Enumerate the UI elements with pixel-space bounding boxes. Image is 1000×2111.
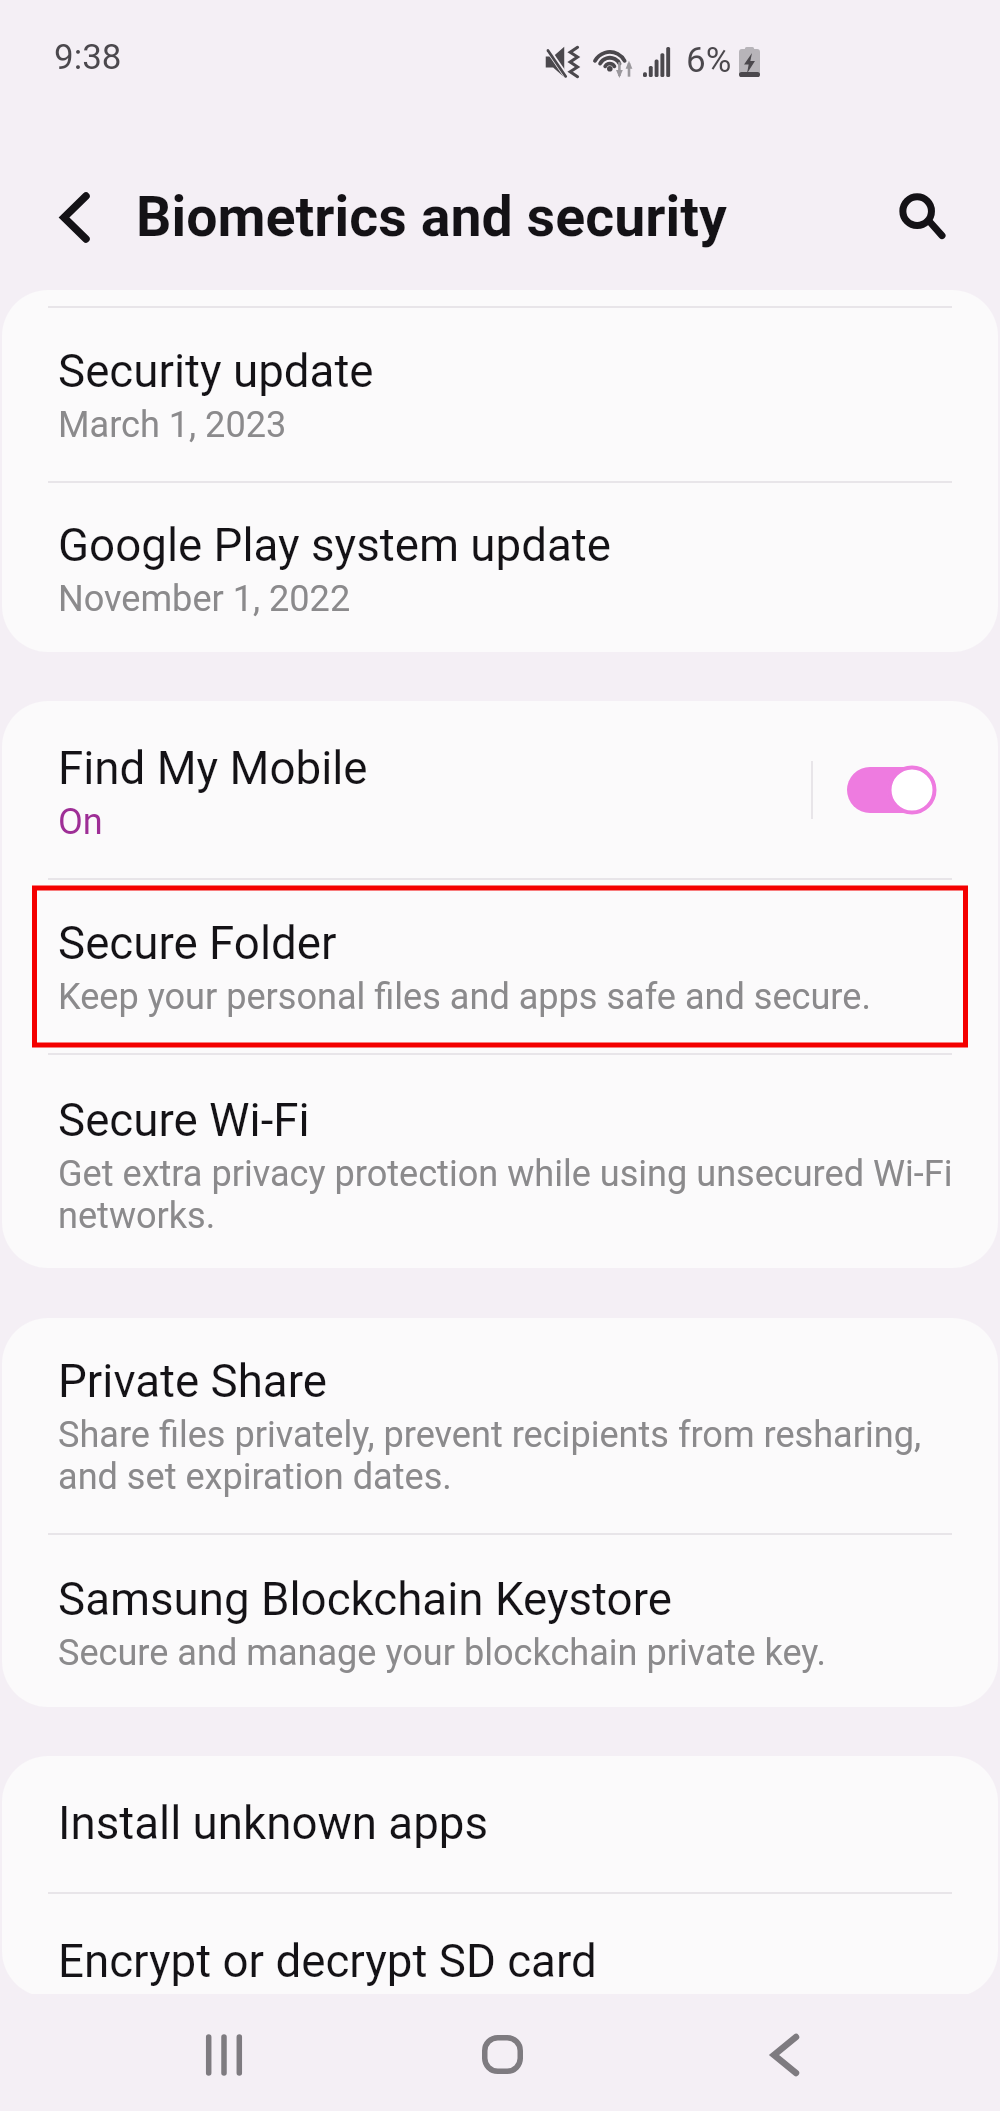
staticText: Share files privately, prevent recipient… (58, 1414, 922, 1498)
button[interactable]: Encrypt or decrypt SD card (2, 1894, 998, 1994)
staticText: Secure Folder (58, 917, 337, 971)
button[interactable]: Find My Mobile (2, 701, 998, 878)
staticText: Security update (58, 345, 374, 399)
button[interactable]: Back (725, 1998, 844, 2111)
staticText: 6% (686, 40, 732, 81)
button[interactable]: Private Share (2, 1318, 998, 1533)
button[interactable]: Install unknown apps (2, 1756, 998, 1892)
staticText: Get extra privacy protection while using… (58, 1153, 953, 1237)
staticText: March 1, 2023 (58, 404, 287, 446)
staticText: Google Play system update (58, 519, 611, 573)
button[interactable]: Find My Mobile, on (847, 765, 937, 815)
button[interactable]: Security update (2, 308, 998, 481)
staticText: Find My Mobile (58, 742, 368, 796)
staticText: 9:38 (54, 37, 122, 78)
button[interactable]: Secure Folder (2, 880, 998, 1053)
staticText: November 1, 2022 (58, 578, 351, 620)
button[interactable]: Samsung Blockchain Keystore (2, 1535, 998, 1707)
staticText: Private Share (58, 1355, 327, 1409)
button[interactable]: Google Play system update (2, 483, 998, 652)
button[interactable]: Home (443, 1997, 562, 2111)
staticText: Keep your personal files and apps safe a… (58, 976, 871, 1018)
staticText: Secure and manage your blockchain privat… (58, 1632, 827, 1674)
staticText: Secure Wi-Fi (58, 1094, 310, 1148)
staticText: Install unknown apps (58, 1797, 489, 1851)
staticText: On (58, 801, 103, 843)
button[interactable]: Secure Wi-Fi (2, 1055, 998, 1268)
staticText: Biometrics and security (136, 185, 727, 250)
button[interactable]: Navigate up (31, 173, 119, 261)
button[interactable]: Recent apps (164, 1998, 283, 2111)
button[interactable]: Search (878, 172, 966, 260)
staticText: Encrypt or decrypt SD card (58, 1935, 597, 1989)
staticText: Samsung Blockchain Keystore (58, 1573, 672, 1627)
